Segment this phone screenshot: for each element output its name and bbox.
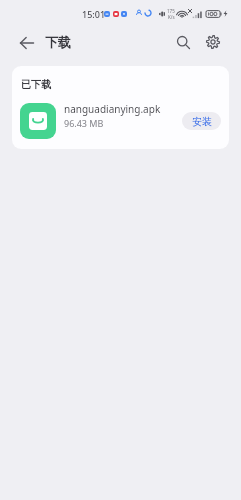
staticText: 下载 bbox=[45, 34, 71, 50]
staticText: K/s bbox=[168, 14, 175, 20]
staticText: nanguadianying.apk bbox=[64, 102, 161, 116]
staticText: 96.43 MB bbox=[64, 117, 104, 129]
button[interactable]: Settings bbox=[195, 24, 231, 60]
staticText: 安装 bbox=[192, 115, 212, 128]
staticText: 已下载 bbox=[21, 78, 51, 91]
button[interactable]: nanguadianying.apk bbox=[12, 96, 229, 141]
staticText: 175 bbox=[167, 8, 175, 14]
button[interactable]: 安装 bbox=[182, 112, 221, 130]
button[interactable]: Search bbox=[165, 24, 201, 60]
button[interactable]: Back bbox=[9, 25, 45, 61]
staticText: 15:01 bbox=[82, 8, 106, 20]
